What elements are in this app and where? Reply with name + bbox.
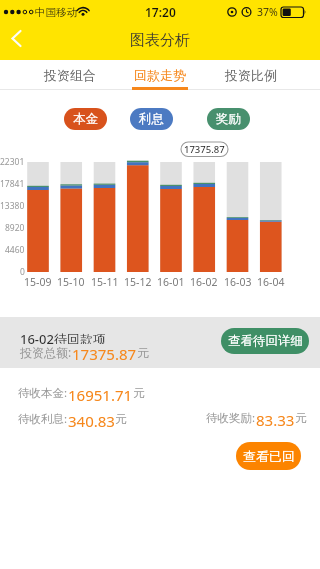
staticText: 16-04 bbox=[257, 275, 285, 289]
button[interactable]: 回款走势 bbox=[115, 60, 205, 89]
button[interactable]: 查看待回详细 bbox=[221, 328, 309, 354]
staticText: 元 bbox=[137, 345, 149, 360]
staticText: 16-02 bbox=[190, 275, 218, 289]
staticText: 投资总额: bbox=[20, 344, 72, 360]
staticText: 37% bbox=[257, 5, 278, 19]
staticText: 奖励 bbox=[216, 111, 241, 127]
staticText: 待收利息: bbox=[18, 411, 68, 427]
staticText: 16-03 bbox=[224, 275, 252, 289]
staticText: 15-12 bbox=[124, 275, 152, 289]
staticText: 元 bbox=[295, 411, 307, 425]
staticText: 中国移动 bbox=[35, 6, 77, 19]
staticText: 83.33 bbox=[256, 410, 295, 426]
staticText: 340.83 bbox=[68, 411, 115, 427]
staticText: 图表分析 bbox=[130, 31, 190, 50]
staticText: 17:20 bbox=[145, 4, 176, 20]
staticText: 15-11 bbox=[91, 275, 119, 289]
staticText: 15-10 bbox=[57, 275, 85, 289]
staticText: 16-02待回款项 bbox=[20, 330, 106, 344]
staticText: 17841 bbox=[0, 178, 25, 190]
staticText: 利息 bbox=[139, 111, 164, 127]
staticText: 17375.87 bbox=[72, 344, 137, 360]
staticText: 查看待回详细 bbox=[228, 333, 303, 349]
staticText: 查看已回 bbox=[243, 448, 295, 464]
button[interactable]: 投资组合 bbox=[25, 60, 115, 89]
staticText: 17375.87 bbox=[184, 143, 225, 156]
staticText: 本金 bbox=[73, 111, 98, 127]
staticText: 15-09 bbox=[24, 275, 52, 289]
staticText: 22301 bbox=[0, 156, 25, 168]
staticText: 元 bbox=[115, 412, 127, 426]
staticText: 待收本金: bbox=[18, 385, 68, 401]
button[interactable]: 利息 bbox=[130, 108, 173, 130]
button[interactable]: 奖励 bbox=[207, 108, 250, 130]
staticText: 元 bbox=[133, 386, 145, 400]
staticText: 13380 bbox=[0, 200, 25, 212]
staticText: 16-01 bbox=[157, 275, 185, 289]
staticText: 8920 bbox=[5, 222, 25, 234]
button[interactable]: 投资比例 bbox=[206, 60, 296, 89]
staticText: 回款走势 bbox=[134, 67, 186, 83]
staticText: 投资组合 bbox=[44, 67, 96, 83]
staticText: 4460 bbox=[5, 244, 25, 256]
button[interactable] bbox=[0, 24, 40, 58]
staticText: 16951.71 bbox=[68, 385, 133, 401]
staticText: 0 bbox=[20, 266, 25, 278]
staticText: 待收奖励: bbox=[206, 410, 256, 426]
button[interactable]: 查看已回 bbox=[236, 442, 301, 470]
staticText: 投资比例 bbox=[225, 67, 277, 83]
button[interactable]: 本金 bbox=[64, 108, 107, 130]
